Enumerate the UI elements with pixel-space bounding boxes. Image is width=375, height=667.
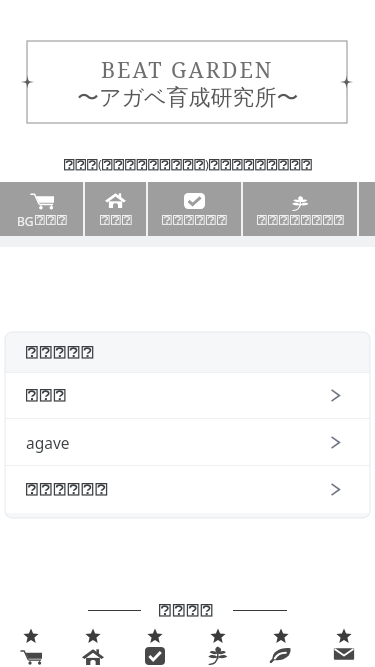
button[interactable]: Nav: [243, 182, 357, 236]
staticText: agave: [26, 432, 70, 453]
button[interactable]: Nav BG: [0, 182, 83, 236]
button[interactable]: Nav: [148, 182, 241, 236]
staticText: ): [205, 155, 209, 173]
button[interactable]: [5, 373, 370, 418]
button[interactable]: Leaf: [249, 624, 312, 667]
button[interactable]: Plants: [186, 624, 249, 667]
button[interactable]: Checklist: [124, 624, 186, 667]
staticText: (: [98, 155, 102, 173]
staticText: BEAT GARDEN: [101, 55, 274, 84]
button[interactable]: Contact: [312, 624, 375, 667]
button[interactable]: Shop: [0, 624, 62, 667]
staticText: BG: [17, 213, 34, 229]
staticText: 〜アガベ育成研究所〜: [77, 84, 299, 112]
button[interactable]: Home: [62, 624, 124, 667]
button[interactable]: Nav: [85, 182, 146, 236]
button[interactable]: [5, 466, 370, 513]
button[interactable]: agave: [5, 419, 370, 465]
